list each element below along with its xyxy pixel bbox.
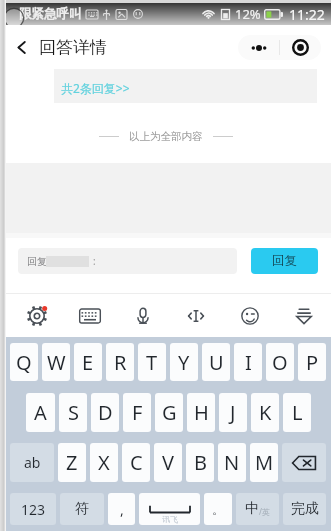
staticText: M <box>255 449 274 476</box>
staticText: 限紧急呼叫 <box>19 6 82 22</box>
staticText: /英 <box>259 506 270 517</box>
button[interactable]: 回复 <box>18 248 237 274</box>
staticText: B <box>194 449 207 476</box>
staticText: , <box>120 500 124 519</box>
staticText: : <box>93 254 96 268</box>
staticText: F <box>132 399 143 426</box>
button[interactable]: Q <box>10 343 38 381</box>
staticText: D <box>98 399 113 426</box>
button[interactable]: W <box>42 343 70 381</box>
button[interactable]: O <box>266 343 294 381</box>
button[interactable]: Hide keyboard <box>277 294 331 337</box>
staticText: O <box>272 349 288 376</box>
staticText: S <box>68 399 79 426</box>
button[interactable]: S <box>59 393 87 432</box>
staticText: ab <box>24 453 41 472</box>
button[interactable]: V <box>154 443 182 482</box>
staticText: Q <box>16 349 32 376</box>
staticText: V <box>162 449 174 476</box>
staticText: 回答详情 <box>39 37 107 58</box>
button[interactable]: K <box>251 393 279 432</box>
button[interactable]: Handwriting <box>169 294 223 337</box>
button[interactable]: 中 <box>236 493 279 525</box>
button[interactable]: C <box>122 443 150 482</box>
staticText: E <box>82 349 94 376</box>
button[interactable]: A <box>26 393 55 432</box>
staticText: I <box>245 349 252 376</box>
button[interactable]: Z <box>58 443 86 482</box>
staticText: U <box>209 349 224 376</box>
button[interactable]: M <box>250 443 278 482</box>
staticText: P <box>306 349 319 376</box>
staticText: 123 <box>21 500 46 519</box>
staticText: 共2条回复>> <box>61 80 130 96</box>
other: Back <box>14 40 29 55</box>
button[interactable]: 符 <box>60 493 104 525</box>
button[interactable]: Backspace <box>282 443 326 482</box>
staticText: 回复 <box>27 255 47 268</box>
button[interactable]: Voice input <box>116 294 169 337</box>
button[interactable]: R <box>106 343 134 381</box>
button[interactable]: D <box>91 393 119 432</box>
staticText: 。 <box>212 502 224 517</box>
staticText: R <box>114 349 127 376</box>
staticText: C <box>130 449 143 476</box>
staticText: K <box>259 399 272 426</box>
staticText: 讯飞 <box>162 514 178 524</box>
button[interactable]: 。 <box>204 493 232 525</box>
button[interactable]: Settings <box>10 294 63 337</box>
button[interactable]: 回复 <box>251 248 318 274</box>
button[interactable]: U <box>202 343 230 381</box>
staticText: J <box>230 399 236 426</box>
button[interactable]: E <box>74 343 102 381</box>
staticText: Z <box>66 449 78 476</box>
staticText: G <box>162 399 177 426</box>
staticText: 12% <box>235 5 261 23</box>
staticText: N <box>224 449 240 476</box>
button[interactable]: T <box>138 343 166 381</box>
button[interactable]: Space <box>139 493 200 525</box>
button[interactable]: G <box>155 393 183 432</box>
staticText: Y <box>178 349 190 376</box>
staticText: L <box>292 399 303 426</box>
staticText: 以上为全部内容 <box>129 130 203 143</box>
staticText: 回复 <box>272 253 297 269</box>
button[interactable]: Y <box>170 343 198 381</box>
staticText: W <box>47 349 66 376</box>
button[interactable]: H <box>187 393 215 432</box>
staticText: 11:22 <box>289 5 325 24</box>
button[interactable]: J <box>219 393 247 432</box>
button[interactable]: Keyboard <box>63 294 116 337</box>
button[interactable]: F <box>123 393 151 432</box>
button[interactable]: Close <box>280 35 321 60</box>
button[interactable]: 123 <box>10 493 56 525</box>
button[interactable]: Back <box>10 25 111 69</box>
staticText: X <box>98 449 110 476</box>
staticText: T <box>146 349 158 376</box>
button[interactable]: P <box>298 343 326 381</box>
button[interactable]: 共2条回复>> <box>54 69 317 103</box>
staticText: 完成 <box>291 500 319 518</box>
button[interactable]: More <box>238 35 279 60</box>
staticText: H <box>194 399 209 426</box>
button[interactable]: , <box>108 493 135 525</box>
button[interactable]: B <box>186 443 214 482</box>
staticText: 符 <box>75 500 89 518</box>
button[interactable]: N <box>218 443 246 482</box>
button[interactable]: L <box>283 393 311 432</box>
button[interactable]: Emoji <box>223 294 277 337</box>
staticText: 中 <box>245 500 259 518</box>
button[interactable]: ab <box>10 443 54 482</box>
staticText: A <box>34 399 47 426</box>
button[interactable]: 完成 <box>283 493 326 525</box>
button[interactable]: I <box>234 343 262 381</box>
button[interactable]: X <box>90 443 118 482</box>
